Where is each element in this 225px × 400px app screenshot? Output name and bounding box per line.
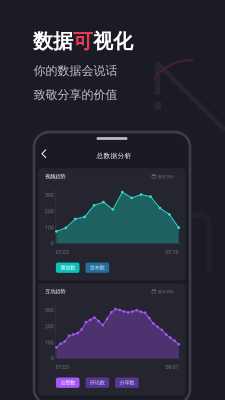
staticText: 点赞数	[60, 379, 75, 386]
staticText: 200	[45, 208, 54, 215]
staticText: 视频趋势	[45, 173, 65, 180]
button[interactable]: 分享数	[115, 377, 139, 388]
staticText: 最近15日	[158, 174, 174, 179]
staticText: 08.01	[165, 363, 178, 370]
staticText: 最近30日	[158, 289, 174, 294]
staticText: 发布数	[90, 264, 105, 271]
staticText: 0	[51, 355, 54, 362]
staticText: 300	[45, 306, 54, 314]
button[interactable]: 播放数	[56, 262, 79, 273]
staticText: 07.03	[56, 363, 69, 370]
staticText: 致敬分享的价值	[33, 87, 117, 102]
staticText: 0	[51, 240, 54, 247]
staticText: 总数据分析	[96, 152, 131, 160]
staticText: 互动趋势	[45, 288, 65, 295]
staticText: 数据	[33, 29, 73, 54]
button[interactable]: 点赞数	[56, 377, 79, 388]
staticText: 分享数	[119, 379, 134, 386]
staticText: 100	[45, 224, 54, 231]
staticText: 视化	[93, 29, 133, 54]
staticText: 可	[73, 29, 93, 54]
staticText: 你的数据会说话	[33, 63, 117, 78]
button[interactable]: Back	[42, 149, 53, 161]
staticText: 评论数	[90, 379, 105, 386]
button[interactable]: 发布数	[85, 262, 109, 273]
staticText: 300	[45, 191, 54, 199]
staticText: 播放数	[60, 264, 75, 271]
staticText: 07.16	[165, 248, 178, 255]
staticText: 100	[45, 339, 54, 346]
button[interactable]: 评论数	[85, 377, 109, 388]
staticText: 200	[45, 323, 54, 330]
staticText: 07.03	[56, 248, 69, 255]
